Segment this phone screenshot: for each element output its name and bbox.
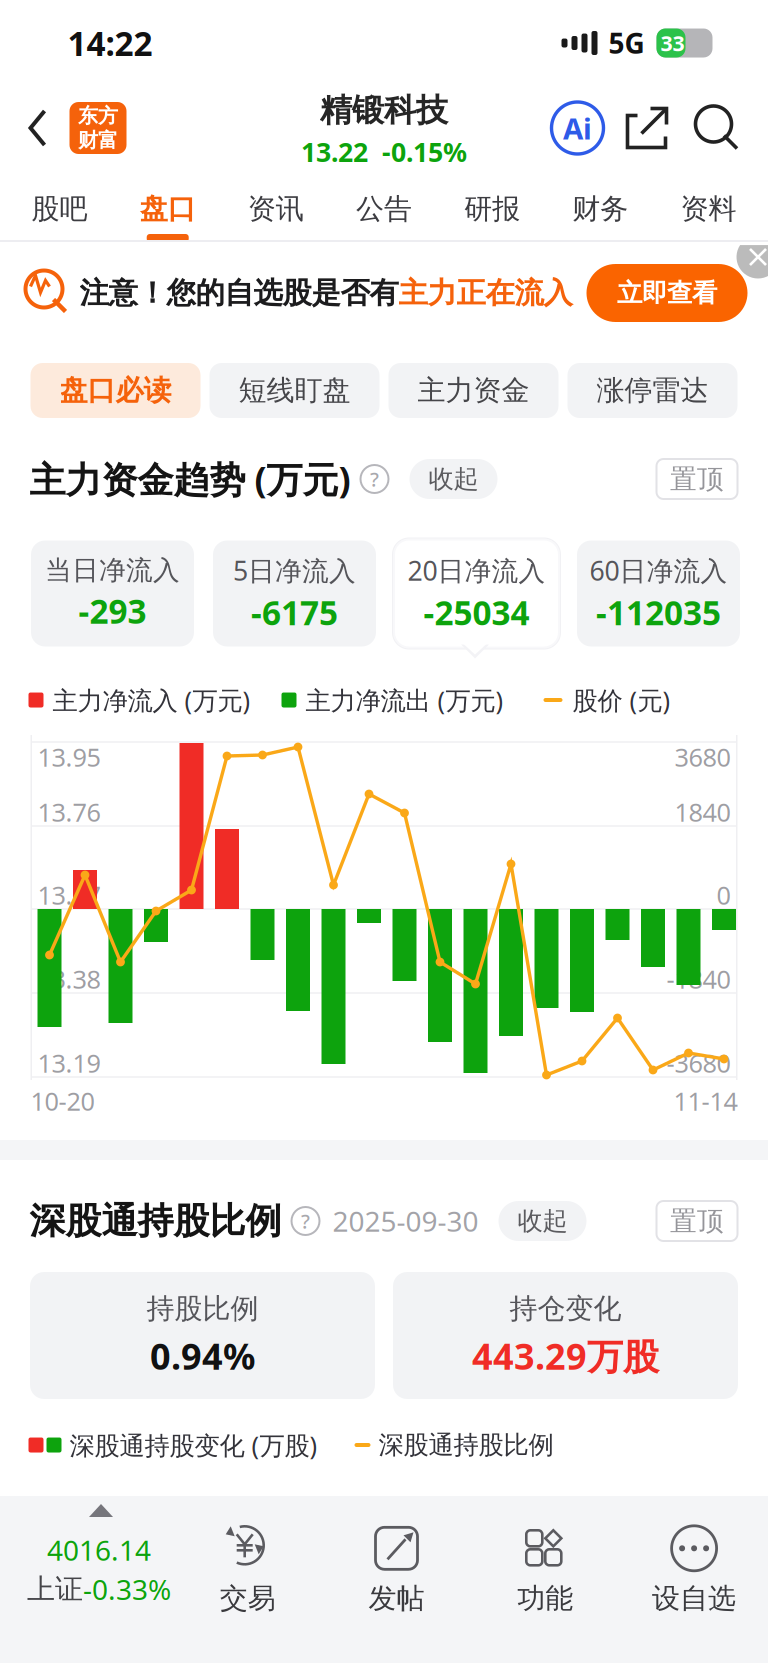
button[interactable]: 财务 [546, 170, 654, 240]
staticText: 深股通持股比例 [29, 1199, 281, 1243]
staticText: 60日净流入 [589, 553, 727, 588]
staticText: 主力资金 [417, 373, 529, 408]
staticText: -1840 [666, 962, 730, 996]
staticText: 立即查看 [617, 277, 717, 308]
button[interactable]: 置顶 [656, 459, 737, 499]
staticText: -293 [78, 589, 146, 633]
staticText: 涨停雷达 [596, 373, 708, 408]
staticText: 收起 [517, 1205, 567, 1236]
button[interactable]: 置顶 [656, 1201, 737, 1241]
staticText: 东方 [78, 103, 118, 128]
button[interactable]: 收起 [498, 1201, 586, 1241]
button[interactable]: 功能 [471, 1512, 620, 1627]
staticText: 研报 [464, 192, 520, 226]
button[interactable]: 立即查看 [586, 264, 747, 322]
staticText: 5G [608, 24, 644, 62]
staticText: 主力净流出 (万元) [305, 683, 503, 717]
button[interactable]: 盘口 [114, 170, 222, 240]
staticText: 财务 [572, 192, 628, 226]
staticText: 深股通持股比例 [378, 1429, 553, 1460]
staticText: -3680 [666, 1046, 730, 1080]
button[interactable]: 持仓变化 [393, 1272, 738, 1399]
staticText: 资料 [680, 192, 736, 226]
staticText: ? [301, 1208, 310, 1234]
staticText: 深股通持股变化 (万股) [69, 1428, 317, 1462]
staticText: 13.57 [37, 878, 100, 912]
staticText: 1840 [674, 795, 730, 829]
staticText: 注意！您的自选股是否有 [79, 275, 398, 311]
staticText: 4016.14 [47, 1531, 151, 1568]
staticText: 精锻科技 [320, 91, 448, 130]
staticText: 置顶 [670, 463, 724, 495]
staticText: Ai [563, 108, 592, 147]
staticText: 持股比例 [146, 1291, 258, 1326]
staticText: 3680 [674, 740, 730, 774]
button[interactable]: AI 助手 [542, 93, 612, 163]
staticText: 主力资金趋势 (万元) [29, 455, 350, 503]
staticText: ? [370, 466, 379, 492]
button[interactable]: 股吧 [5, 170, 114, 240]
button[interactable]: 资讯 [222, 170, 330, 240]
button[interactable]: 涨停雷达 [567, 363, 737, 418]
staticText: 置顶 [670, 1205, 724, 1237]
button[interactable]: 发帖 [322, 1512, 471, 1627]
button[interactable]: 短线盯盘 [209, 363, 379, 418]
staticText: 设自选 [652, 1581, 736, 1616]
staticText: 11-14 [673, 1084, 737, 1118]
staticText: 13.95 [37, 740, 100, 774]
button[interactable]: 盘口必读 [30, 363, 200, 418]
staticText: 0.94% [150, 1332, 255, 1380]
staticText: -6175 [251, 590, 338, 634]
button[interactable]: 关闭 [725, 245, 768, 279]
button[interactable]: 主力资金 [388, 363, 558, 418]
staticText: 短线盯盘 [238, 373, 350, 408]
button[interactable]: 资料 [654, 170, 762, 240]
staticText: 33 [660, 29, 684, 57]
staticText: 股吧 [32, 192, 88, 226]
staticText: 2025-09-30 [332, 1202, 478, 1240]
staticText: 主力净流入 (万元) [52, 683, 250, 717]
button[interactable]: 持股比例 [30, 1272, 375, 1399]
button[interactable]: 收起 [409, 459, 497, 499]
staticText: 0 [716, 878, 730, 912]
staticText: 公告 [356, 192, 412, 226]
staticText: 10-20 [30, 1084, 94, 1118]
staticText: 功能 [517, 1581, 573, 1616]
staticText: 14:22 [67, 21, 152, 65]
staticText: 443.29万股 [472, 1332, 659, 1380]
staticText: 发帖 [368, 1581, 424, 1616]
staticText: -0.33% [83, 1570, 171, 1608]
staticText: 盘口 [140, 192, 196, 226]
staticText: -25034 [423, 590, 529, 634]
button[interactable]: 交易 [173, 1512, 322, 1627]
button[interactable]: 60日净流入 [577, 540, 740, 646]
button[interactable]: 研报 [438, 170, 546, 240]
staticText: 收起 [428, 463, 478, 494]
button[interactable]: 分享 [612, 93, 682, 163]
staticText: 当日净流入 [45, 554, 180, 587]
staticText: 交易 [220, 1581, 276, 1616]
staticText: 资讯 [248, 192, 304, 226]
staticText: 13.19 [37, 1046, 100, 1080]
staticText: 上证 [27, 1572, 83, 1606]
staticText: 持仓变化 [509, 1291, 621, 1326]
button[interactable]: 20日净流入 [395, 540, 558, 646]
staticText: 13.76 [37, 795, 100, 829]
staticText: 盘口必读 [59, 373, 171, 408]
button[interactable]: 公告 [330, 170, 438, 240]
staticText: 财富 [78, 128, 118, 153]
staticText: 13.38 [37, 962, 100, 996]
staticText: 主力正在流入 [398, 275, 572, 311]
button[interactable]: 返回 [0, 88, 69, 168]
button[interactable]: 搜索 [682, 93, 750, 163]
staticText: 5日净流入 [233, 553, 356, 588]
staticText: 股价 (元) [572, 683, 670, 717]
button[interactable]: 设自选 [620, 1512, 768, 1627]
staticText: 20日净流入 [407, 553, 545, 588]
button[interactable]: 当日净流入 [31, 540, 194, 646]
button[interactable]: 4016.14 [24, 1512, 173, 1627]
staticText: 13.22 -0.15% [301, 134, 467, 169]
button[interactable]: 5日净流入 [213, 540, 376, 646]
staticText: -112035 [596, 590, 721, 634]
